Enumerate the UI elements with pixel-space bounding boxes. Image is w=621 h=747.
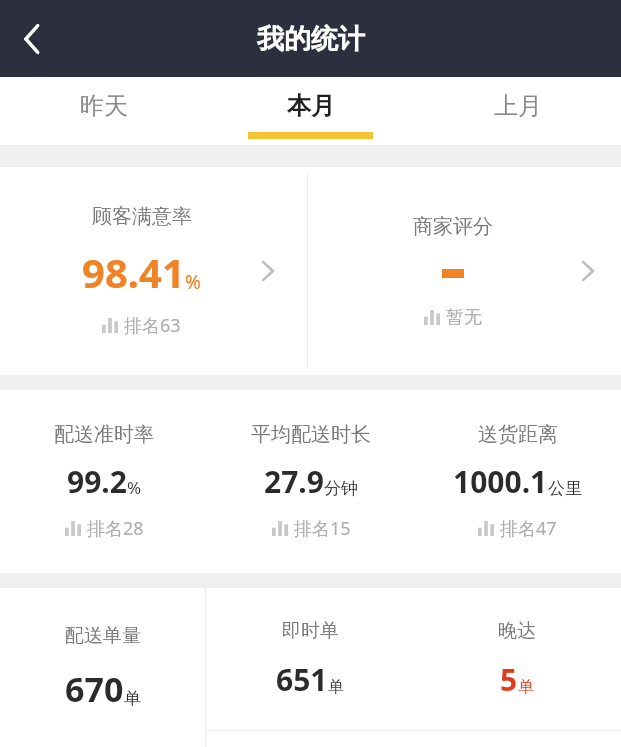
button[interactable]: 本月: [207, 77, 414, 145]
staticText: 99.2: [67, 461, 127, 502]
staticText: 单: [518, 677, 534, 697]
button[interactable]: 昨天: [0, 77, 207, 145]
staticText: 商家评分: [413, 214, 493, 239]
staticText: 排名15: [294, 516, 351, 541]
staticText: 单: [124, 688, 141, 709]
staticText: 顾客满意率: [92, 204, 192, 229]
staticText: 平均配送时长: [251, 422, 371, 447]
staticText: 27.9: [264, 461, 324, 502]
staticText: 排名28: [87, 516, 144, 541]
staticText: 670: [65, 666, 124, 712]
button[interactable]: 晚达: [413, 588, 621, 730]
staticText: 单: [328, 677, 344, 697]
button[interactable]: 商家评分: [308, 167, 621, 375]
staticText: 晚达: [498, 619, 536, 643]
button[interactable]: 顾客满意率: [0, 167, 307, 375]
button[interactable]: 送货距离: [414, 390, 621, 573]
button[interactable]: 上月: [414, 77, 621, 145]
button[interactable]: 配送单量: [0, 588, 205, 747]
button[interactable]: 配送准时率: [0, 390, 207, 573]
staticText: 即时单: [282, 619, 339, 643]
staticText: %: [185, 269, 201, 295]
staticText: 本月: [287, 91, 335, 121]
button[interactable]: Back: [6, 13, 58, 65]
staticText: 98.41: [82, 245, 185, 299]
staticText: 5: [500, 659, 518, 700]
staticText: 我的统计: [257, 22, 365, 56]
staticText: 公里: [548, 478, 582, 499]
staticText: 1000.1: [453, 461, 548, 502]
staticText: 配送单量: [65, 624, 141, 648]
staticText: 暂无: [446, 306, 482, 329]
staticText: 上月: [494, 91, 542, 121]
staticText: 昨天: [80, 91, 128, 121]
staticText: 651: [276, 659, 328, 700]
staticText: 配送准时率: [54, 422, 154, 447]
staticText: 排名47: [500, 516, 557, 541]
staticText: %: [127, 476, 142, 499]
staticText: 分钟: [324, 478, 358, 499]
staticText: 送货距离: [478, 422, 558, 447]
button[interactable]: 平均配送时长: [207, 390, 414, 573]
button[interactable]: 即时单: [206, 588, 413, 730]
staticText: 排名63: [124, 313, 181, 338]
